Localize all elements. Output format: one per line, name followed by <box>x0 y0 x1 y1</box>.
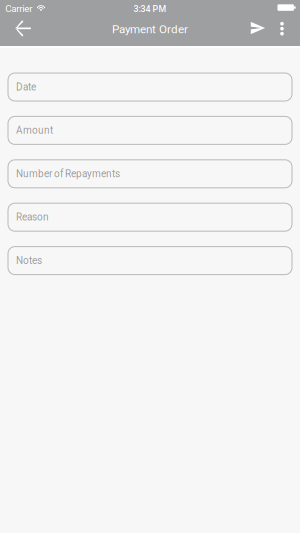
button[interactable]: Back <box>0 16 42 41</box>
staticText: Payment Order <box>112 23 188 36</box>
button[interactable]: Amount <box>8 116 292 144</box>
button[interactable]: More options <box>0 16 292 40</box>
staticText: Reason <box>16 211 49 223</box>
button[interactable]: Date <box>8 73 292 101</box>
staticText: Number of Repayments <box>16 168 120 180</box>
staticText: Amount <box>16 124 53 136</box>
staticText: Carrier <box>5 3 32 14</box>
staticText: Notes <box>16 255 42 266</box>
button[interactable]: Number of Repayments <box>8 160 292 188</box>
button[interactable]: Send <box>0 16 272 39</box>
button[interactable]: Reason <box>8 203 292 231</box>
staticText: 3:34 PM <box>133 4 166 14</box>
staticText: Date <box>16 81 36 93</box>
button[interactable]: Notes <box>8 247 292 275</box>
